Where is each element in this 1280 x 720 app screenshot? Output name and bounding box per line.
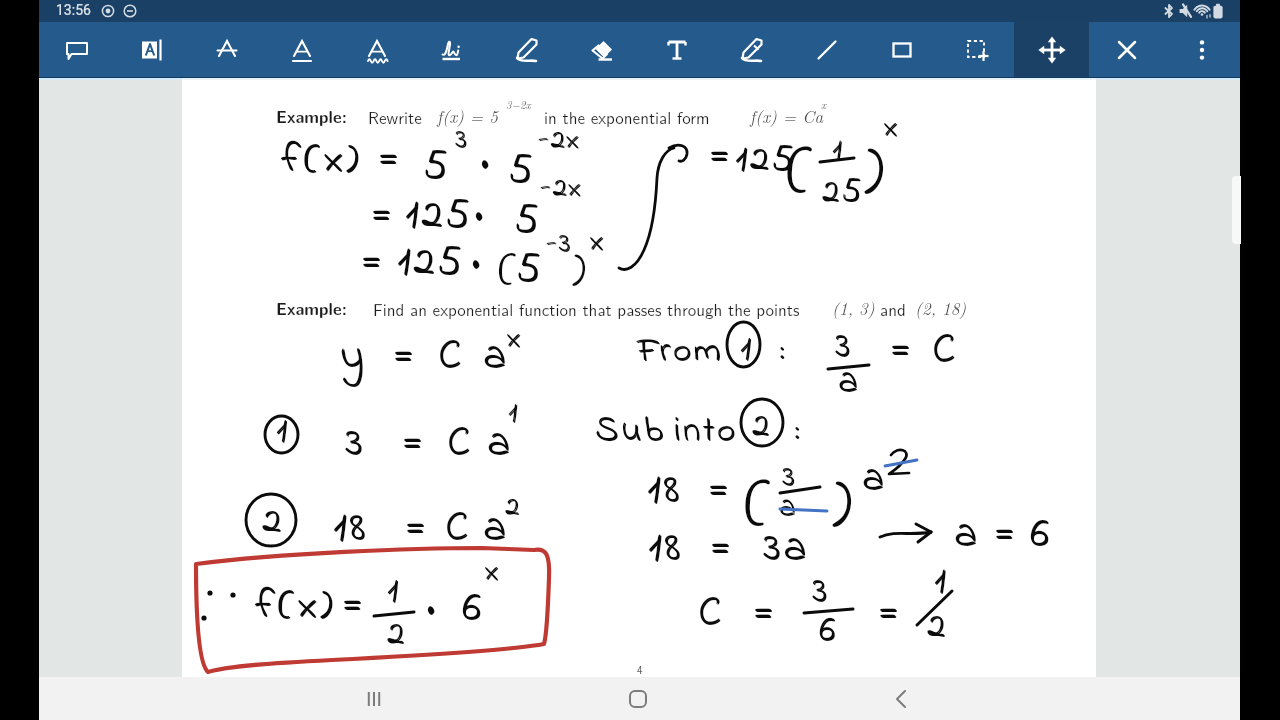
- staticText: =: [710, 127, 734, 188]
- staticText: into: [675, 407, 739, 458]
- staticText: f(x): [255, 575, 336, 636]
- staticText: =: [402, 413, 426, 474]
- staticText: 125: [406, 186, 474, 247]
- staticText: 6: [819, 605, 838, 658]
- staticText: 18: [647, 460, 682, 521]
- staticText: =: [403, 414, 427, 475]
- staticText: 2: [262, 494, 284, 549]
- staticText: -2x: [538, 120, 581, 161]
- button[interactable]: Strikethrough: [189, 22, 264, 78]
- staticText: a: [484, 499, 510, 560]
- staticText: Sub: [595, 405, 666, 458]
- staticText: 125: [735, 132, 796, 187]
- staticText: 3a: [763, 518, 809, 579]
- staticText: =: [342, 575, 366, 636]
- button[interactable]: Rectangle: [864, 22, 939, 78]
- staticText: =: [753, 583, 777, 644]
- staticText: (: [498, 236, 522, 306]
- button[interactable]: Signature: [414, 22, 489, 78]
- staticText: =: [394, 327, 418, 388]
- staticText: a: [487, 413, 513, 474]
- staticText: a: [483, 498, 509, 559]
- staticText: .: [474, 179, 486, 240]
- staticText: C: [933, 321, 959, 382]
- staticText: 125: [405, 185, 473, 246]
- staticText: 5: [424, 137, 451, 198]
- staticText: =: [891, 321, 915, 382]
- staticText: 2: [505, 487, 521, 528]
- staticText: a: [488, 414, 514, 475]
- staticText: 125: [736, 133, 797, 188]
- staticText: ): [864, 122, 890, 224]
- staticText: C: [448, 414, 474, 475]
- staticText: =: [343, 576, 367, 637]
- staticText: 18: [649, 519, 684, 580]
- staticText: .: [480, 127, 492, 188]
- staticText: 18: [334, 499, 369, 560]
- staticText: 2: [753, 403, 773, 453]
- staticText: C: [438, 326, 464, 387]
- staticText: 18: [648, 518, 683, 579]
- button[interactable]: More options: [1164, 22, 1239, 78]
- staticText: 1: [832, 130, 844, 174]
- button[interactable]: Line: [789, 22, 864, 78]
- button[interactable]: Recent apps: [344, 677, 404, 720]
- staticText: and: [880, 296, 906, 321]
- staticText: a: [839, 357, 861, 410]
- staticText: 1: [741, 327, 755, 377]
- button[interactable]: Text box: [114, 22, 189, 78]
- button[interactable]: Close: [1089, 22, 1164, 78]
- staticText: Rewrite: [368, 104, 422, 129]
- staticText: =: [709, 126, 733, 187]
- staticText: =: [879, 584, 903, 645]
- button[interactable]: Highlighter: [714, 22, 789, 78]
- button[interactable]: Squiggly underline: [339, 22, 414, 78]
- staticText: 1: [277, 409, 291, 459]
- staticText: .: [426, 573, 438, 634]
- staticText: From: [637, 326, 723, 377]
- staticText: =: [393, 326, 417, 387]
- staticText: 1: [276, 408, 290, 458]
- staticText: 5: [515, 191, 542, 252]
- button[interactable]: Home: [608, 677, 668, 720]
- staticText: a: [955, 505, 981, 566]
- staticText: f(x): [282, 130, 363, 191]
- staticText: :: [781, 321, 788, 382]
- staticText: =: [372, 186, 396, 247]
- button[interactable]: Move: [1014, 22, 1089, 78]
- button[interactable]: Select area: [939, 22, 1014, 78]
- staticText: ): [832, 455, 858, 557]
- button[interactable]: Eraser: [564, 22, 639, 78]
- staticText: .: [472, 228, 484, 289]
- staticText: 3: [782, 456, 797, 500]
- staticText: 18: [333, 498, 368, 559]
- staticText: 1: [508, 394, 519, 435]
- button[interactable]: Typewriter: [639, 22, 714, 78]
- staticText: C: [439, 327, 465, 388]
- staticText: 3: [783, 457, 798, 501]
- staticText: x: [885, 107, 901, 151]
- staticText: 25: [822, 168, 864, 218]
- staticText: Find an exponential function that passes…: [373, 296, 800, 321]
- staticText: -2x: [539, 121, 582, 162]
- staticText: 18: [648, 461, 683, 522]
- button[interactable]: Back: [871, 677, 931, 720]
- staticText: 1: [935, 557, 949, 610]
- staticText: a: [863, 451, 888, 509]
- staticText: f(x) = 5: [437, 104, 498, 128]
- staticText: (: [744, 455, 779, 557]
- button[interactable]: Pen: [489, 22, 564, 78]
- staticText: ): [572, 236, 590, 306]
- button[interactable]: Comment: [39, 22, 114, 78]
- staticText: Example:: [276, 296, 347, 320]
- staticText: x: [591, 221, 607, 265]
- staticText: 6: [1031, 505, 1053, 566]
- staticText: -3: [547, 225, 573, 266]
- staticText: 2: [752, 402, 772, 452]
- staticText: 1: [833, 131, 845, 175]
- staticText: 3−2x: [506, 97, 531, 113]
- staticText: 6: [820, 606, 839, 659]
- button[interactable]: Underline: [264, 22, 339, 78]
- staticText: a: [780, 487, 799, 531]
